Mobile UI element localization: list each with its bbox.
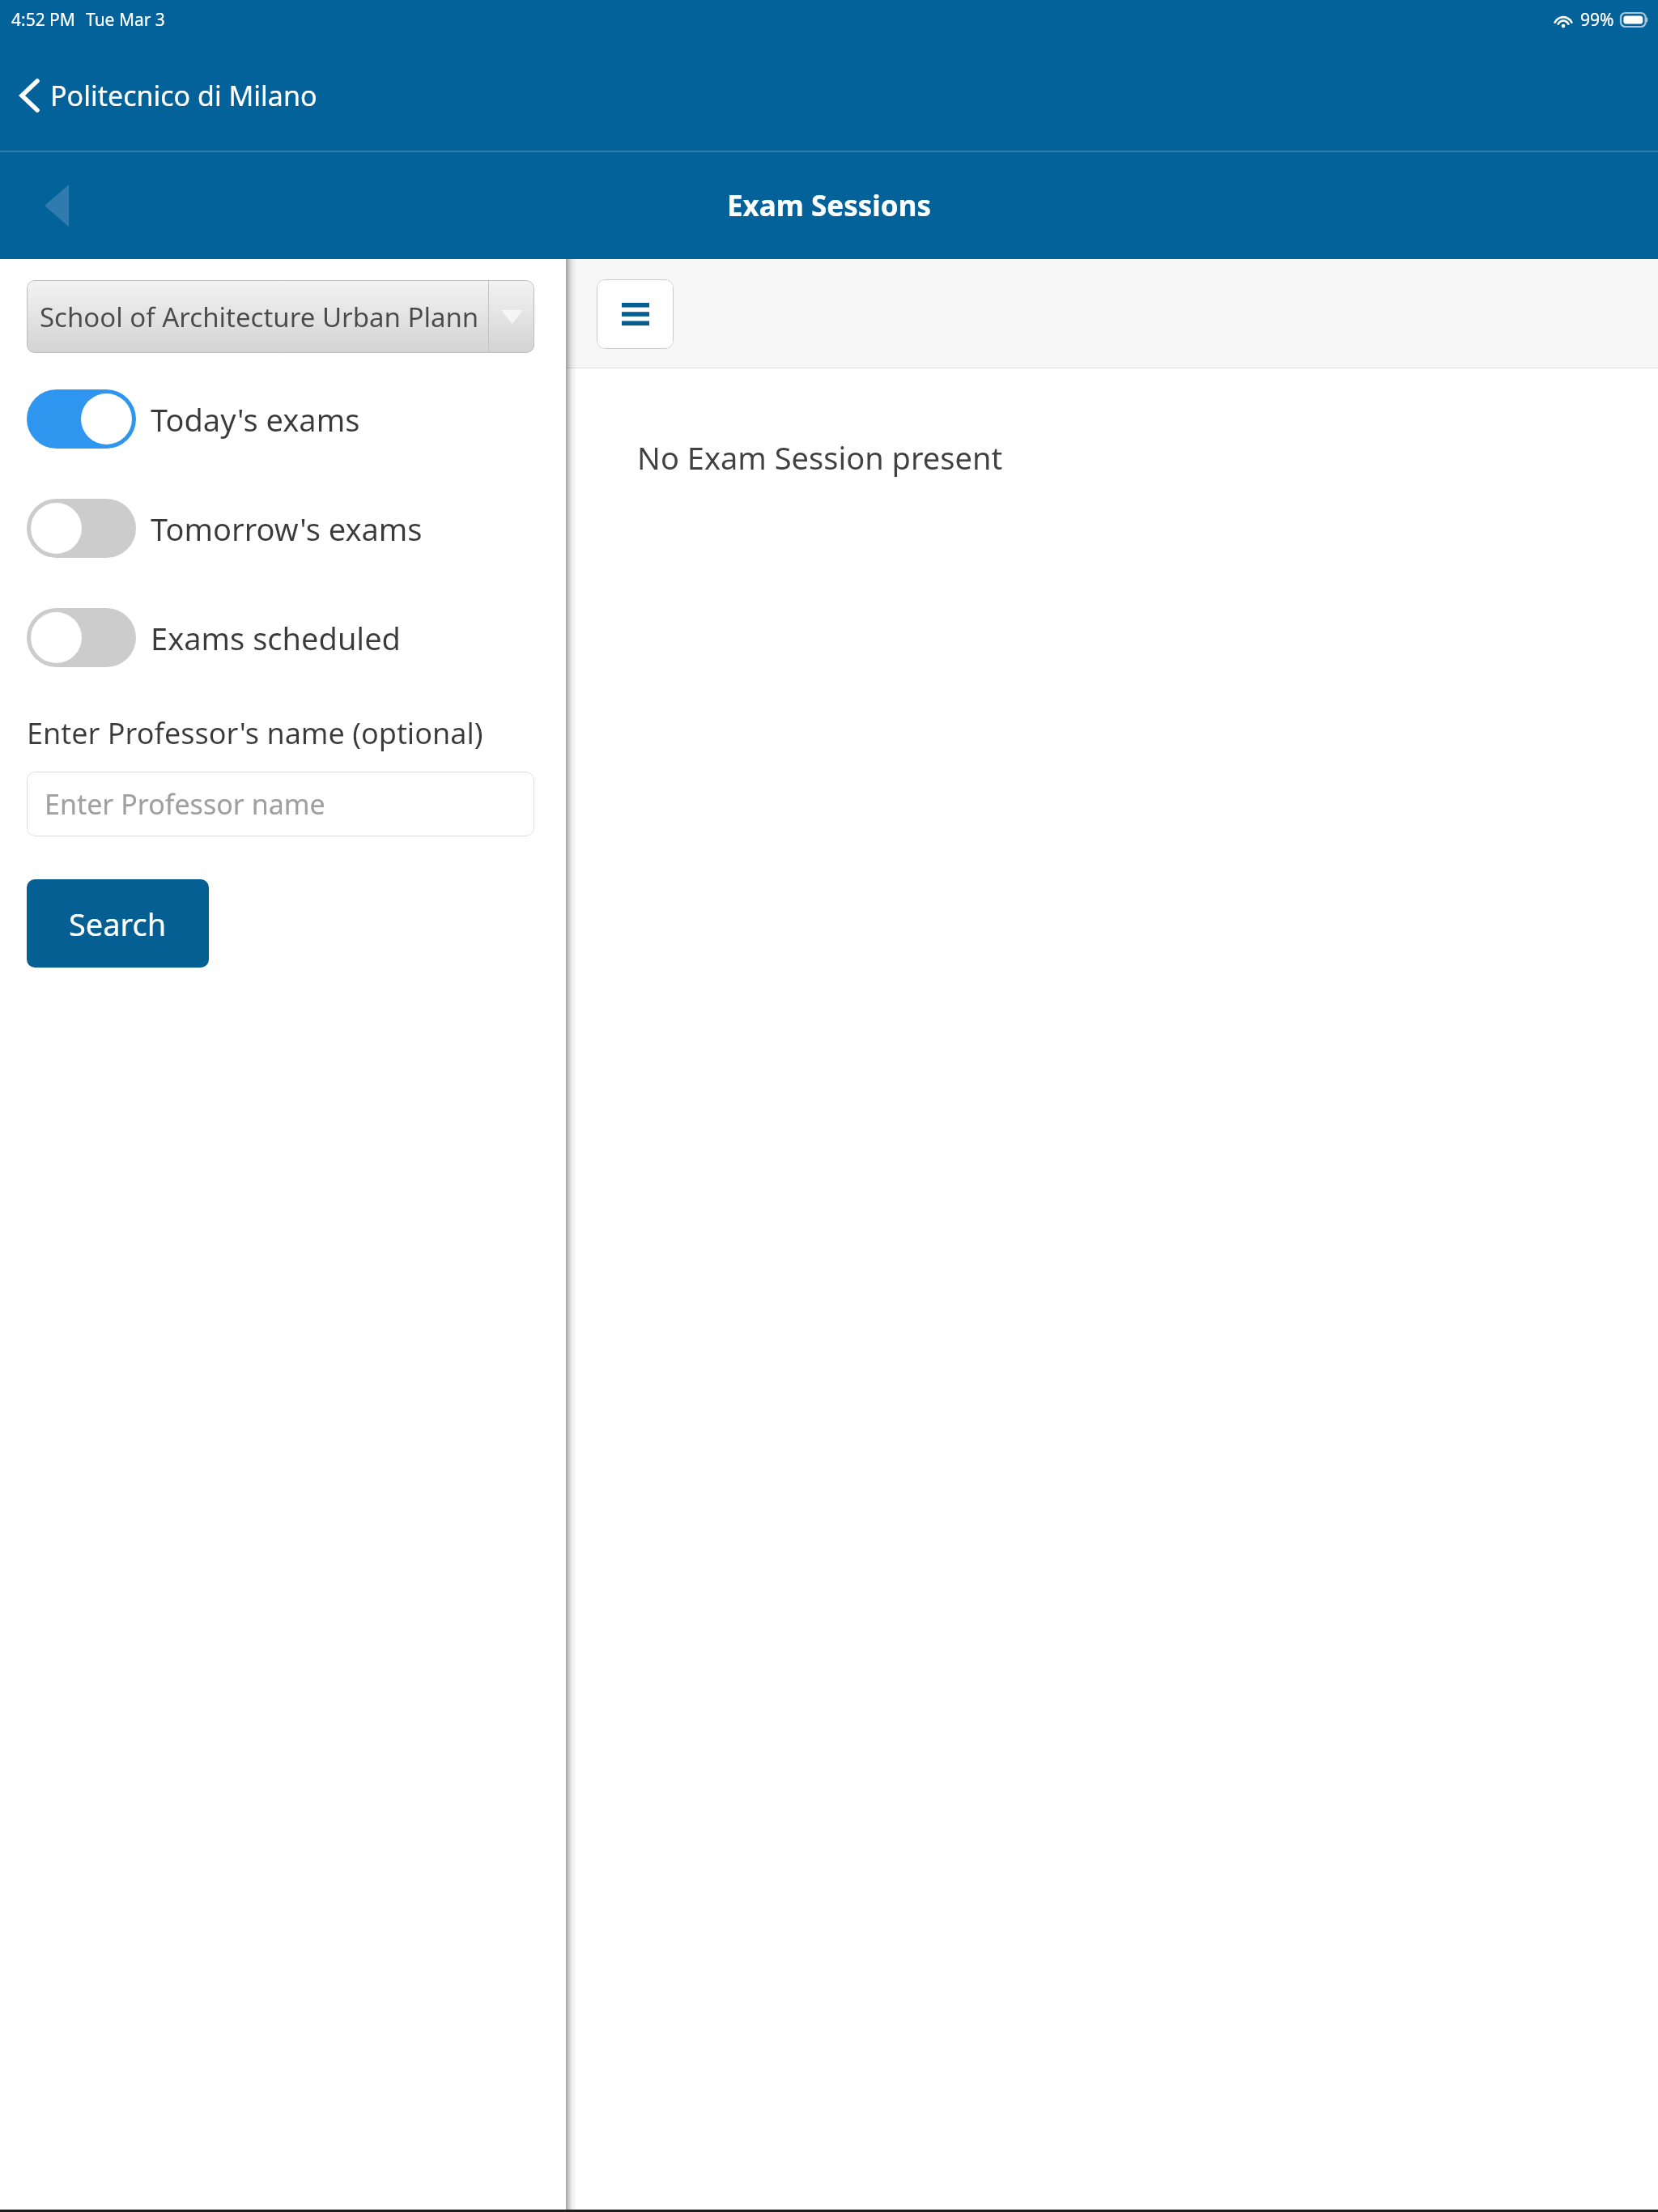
button[interactable]: Today's exams <box>0 389 566 449</box>
button[interactable] <box>27 608 136 667</box>
button[interactable]: Enter Professor name <box>27 772 534 836</box>
button[interactable]: School of Architecture Urban Plann <box>27 280 534 353</box>
button[interactable] <box>27 389 136 449</box>
staticText: No Exam Session present <box>637 436 1003 479</box>
button[interactable] <box>27 499 136 558</box>
staticText: 4:52 PM <box>11 8 75 32</box>
staticText: Enter Professor name <box>45 785 325 823</box>
button[interactable]: Search <box>27 879 209 968</box>
button[interactable]: Menu <box>597 279 674 349</box>
staticText: Search <box>69 903 167 945</box>
button[interactable]: Tomorrow's exams <box>0 499 566 558</box>
button[interactable]: Politecnico di Milano <box>0 67 334 124</box>
button[interactable]: Back <box>34 183 79 228</box>
staticText: Today's exams <box>151 398 360 440</box>
staticText: Exam Sessions <box>727 186 932 225</box>
staticText: Tue Mar 3 <box>86 8 165 32</box>
staticText: 99% <box>1580 8 1614 32</box>
staticText: Tomorrow's exams <box>151 508 423 550</box>
button[interactable]: Exams scheduled <box>0 608 566 667</box>
staticText: Exams scheduled <box>151 617 401 659</box>
staticText: Enter Professor's name (optional) <box>27 713 483 753</box>
staticText: Politecnico di Milano <box>50 77 317 114</box>
staticText: School of Architecture Urban Plann <box>40 299 488 335</box>
